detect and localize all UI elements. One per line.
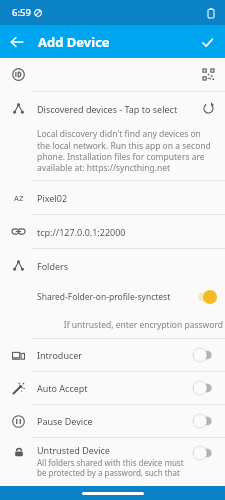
staticText: Untrusted Device (37, 444, 110, 456)
staticText: AZ (14, 193, 24, 203)
button[interactable]: Pause Device (0, 405, 225, 437)
staticText: Discovered devices - Tap to select (37, 103, 178, 115)
button[interactable]: Scan QR code (192, 58, 225, 91)
staticText: All folders shared with this device must… (37, 457, 189, 478)
staticText: Auto Accept (37, 382, 88, 394)
staticText: 6:59 (12, 6, 31, 19)
staticText: Add Device (38, 33, 110, 51)
button[interactable]: Refresh (192, 92, 225, 125)
button[interactable]: Folders (0, 249, 225, 282)
button[interactable]: Introducer (0, 339, 225, 371)
staticText: Introducer (37, 349, 83, 361)
button[interactable]: Shared-Folder-on-profile-synctest (37, 282, 217, 312)
staticText: tcp://127.0.0.1:22000 (37, 226, 126, 238)
staticText: Shared-Folder-on-profile-synctest (37, 291, 171, 303)
staticText: Pixel02 (37, 192, 68, 204)
button[interactable]: Save (194, 29, 220, 55)
button[interactable]: Scan QR code (0, 58, 225, 91)
button[interactable]: AZ (0, 181, 225, 214)
staticText: Folders (37, 260, 69, 272)
button[interactable]: Navigate up (4, 29, 30, 55)
button[interactable]: tcp://127.0.0.1:22000 (0, 215, 225, 248)
button[interactable]: Discovered devices - Tap to select (0, 92, 225, 125)
staticText: Local discovery didn't find any devices … (37, 128, 211, 174)
button[interactable]: Auto Accept (0, 372, 225, 404)
button[interactable]: Untrusted Device (0, 438, 225, 486)
staticText: If untrusted, enter encryption password (63, 319, 223, 331)
staticText: Pause Device (37, 415, 93, 427)
